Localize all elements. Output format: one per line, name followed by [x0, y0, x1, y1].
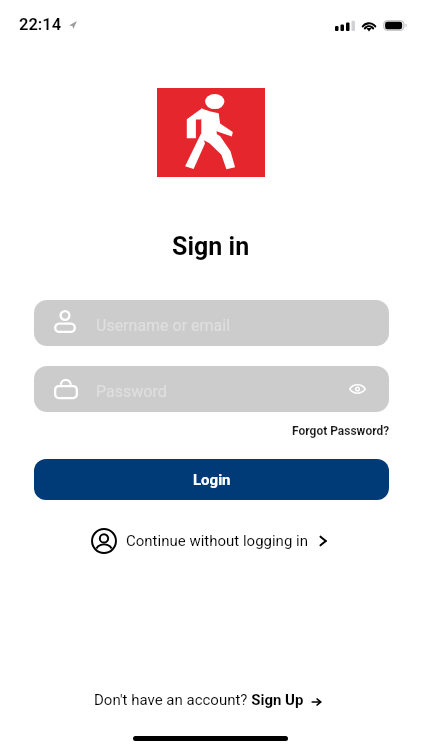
staticText: Don't have an account? Sign Up	[94, 691, 304, 709]
button[interactable]: Don't have an account? Sign Up	[94, 689, 329, 711]
staticText: Login	[193, 471, 231, 489]
button[interactable]: Forgot Password?	[292, 424, 390, 438]
staticText: Username or email	[96, 316, 231, 335]
staticText: Continue without logging in	[126, 532, 308, 550]
staticText: Password	[96, 382, 167, 401]
button[interactable]: Login	[34, 459, 389, 500]
staticText: Sign in	[172, 232, 250, 261]
button[interactable]: Username or email	[34, 300, 389, 346]
button[interactable]: Continue without logging in	[91, 524, 331, 557]
button[interactable]: Password	[34, 366, 389, 412]
button[interactable]: Show password	[333, 366, 382, 412]
staticText: 22:14	[19, 15, 62, 34]
